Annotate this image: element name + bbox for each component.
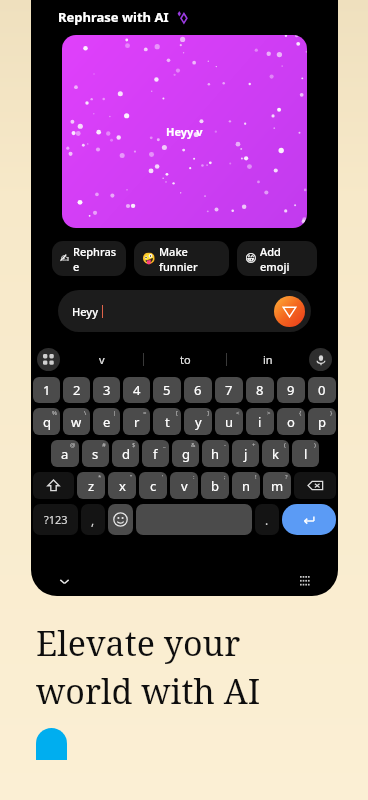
button[interactable]: l	[292, 440, 319, 467]
button[interactable]: 😁	[237, 241, 317, 276]
staticText: o	[287, 413, 295, 431]
button[interactable]: ✍️	[52, 241, 126, 276]
button[interactable]: x	[108, 472, 136, 499]
button[interactable]: Shift	[33, 472, 74, 499]
staticText: &	[191, 441, 196, 449]
staticText: m	[271, 477, 284, 495]
staticText: )	[314, 441, 316, 449]
staticText: l	[304, 445, 308, 463]
button[interactable]: Emoji	[108, 504, 133, 535]
button[interactable]: to	[144, 344, 226, 374]
staticText: 9	[287, 381, 295, 399]
button[interactable]: Backspace	[294, 472, 336, 499]
button[interactable]: i	[246, 408, 274, 435]
button[interactable]: k	[262, 440, 289, 467]
staticText: to	[180, 352, 191, 367]
button[interactable]: b	[201, 472, 229, 499]
staticText: %	[52, 409, 57, 417]
staticText: @	[70, 441, 76, 449]
staticText: Heyy v	[166, 124, 203, 139]
button[interactable]: 8	[246, 377, 274, 403]
button[interactable]: Voice input	[309, 348, 332, 371]
button[interactable]: a	[51, 440, 79, 467]
staticText: g	[182, 445, 190, 463]
button[interactable]: 0	[308, 377, 336, 403]
staticText: s	[92, 445, 99, 463]
button[interactable]: Heyy	[58, 290, 311, 332]
button[interactable]: 4	[123, 377, 150, 403]
button[interactable]: m	[263, 472, 291, 499]
button[interactable]: 3	[93, 377, 120, 403]
staticText: 8	[256, 381, 264, 399]
button[interactable]: r	[123, 408, 150, 435]
staticText: $	[132, 441, 136, 449]
button[interactable]: n	[232, 472, 260, 499]
button[interactable]: d	[112, 440, 139, 467]
staticText: *	[98, 473, 102, 481]
staticText: 1	[43, 381, 51, 399]
staticText: Heyy	[72, 304, 98, 319]
staticText: world with AI	[36, 668, 261, 714]
button[interactable]: p	[308, 408, 336, 435]
button[interactable]: 🤪	[134, 241, 229, 276]
button[interactable]: v	[60, 344, 143, 374]
staticText: 5	[163, 381, 171, 399]
button[interactable]: 9	[277, 377, 305, 403]
staticText: v	[181, 477, 188, 495]
staticText: 6	[194, 381, 202, 399]
button[interactable]: y	[184, 408, 212, 435]
button[interactable]: t	[153, 408, 181, 435]
button[interactable]: s	[82, 440, 109, 467]
button[interactable]: Switch keyboard	[296, 572, 314, 590]
button[interactable]: 1	[33, 377, 60, 403]
button[interactable]: .	[255, 504, 279, 535]
button[interactable]: f	[142, 440, 169, 467]
button[interactable]: Send	[274, 296, 305, 327]
button[interactable]: Space	[136, 504, 252, 535]
button[interactable]: ?123	[33, 504, 78, 535]
button[interactable]: c	[139, 472, 167, 499]
staticText: 🤪	[142, 252, 156, 265]
button[interactable]: 5	[153, 377, 181, 403]
button[interactable]: 2	[63, 377, 90, 403]
staticText: \	[84, 409, 87, 417]
staticText: in	[263, 352, 273, 367]
staticText: Elevate your	[36, 620, 241, 666]
staticText: 7	[225, 381, 233, 399]
button[interactable]: Hide keyboard	[55, 572, 73, 590]
staticText: !	[255, 473, 257, 481]
button[interactable]: j	[232, 440, 259, 467]
staticText: _	[163, 441, 166, 449]
staticText: ]	[207, 409, 209, 417]
button[interactable]: v	[170, 472, 198, 499]
staticText: e	[103, 413, 111, 431]
staticText: Rephrase	[73, 244, 118, 274]
staticText: u	[225, 413, 234, 431]
button[interactable]: q	[33, 408, 60, 435]
button[interactable]: u	[215, 408, 243, 435]
button[interactable]: o	[277, 408, 305, 435]
button[interactable]: w	[63, 408, 90, 435]
staticText: "	[130, 473, 133, 481]
staticText: <	[236, 409, 240, 417]
button[interactable]: z	[77, 472, 105, 499]
staticText: d	[122, 445, 130, 463]
button[interactable]: e	[93, 408, 120, 435]
button[interactable]: 7	[215, 377, 243, 403]
staticText: ?	[285, 473, 288, 481]
button[interactable]: Toolbar	[37, 348, 60, 371]
button[interactable]: g	[172, 440, 199, 467]
staticText: f	[153, 445, 158, 463]
staticText: r	[134, 413, 140, 431]
staticText: v	[99, 352, 105, 367]
staticText: Make funnier	[159, 244, 221, 274]
button[interactable]: 6	[184, 377, 212, 403]
staticText: =	[143, 409, 147, 417]
button[interactable]: h	[202, 440, 229, 467]
staticText: q	[43, 413, 51, 431]
button[interactable]: Enter	[282, 504, 336, 535]
staticText: 0	[318, 381, 326, 399]
button[interactable]: in	[227, 344, 309, 374]
staticText: t	[165, 413, 170, 431]
button[interactable]: ,	[81, 504, 105, 535]
